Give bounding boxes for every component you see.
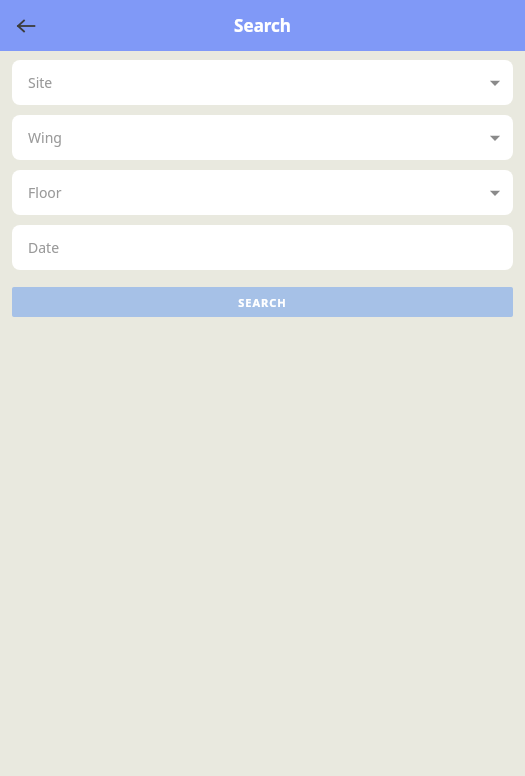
- staticText: Site: [28, 73, 53, 92]
- staticText: Wing: [28, 128, 62, 147]
- staticText: SEARCH: [238, 295, 287, 310]
- button[interactable]: Date: [12, 225, 513, 270]
- staticText: Date: [28, 238, 60, 257]
- button[interactable]: SEARCH: [12, 287, 513, 317]
- button[interactable]: Site: [12, 60, 513, 105]
- button[interactable]: Back: [8, 8, 44, 44]
- staticText: Floor: [28, 183, 62, 202]
- button[interactable]: Wing: [12, 115, 513, 160]
- staticText: Search: [234, 14, 291, 37]
- button[interactable]: Floor: [12, 170, 513, 215]
